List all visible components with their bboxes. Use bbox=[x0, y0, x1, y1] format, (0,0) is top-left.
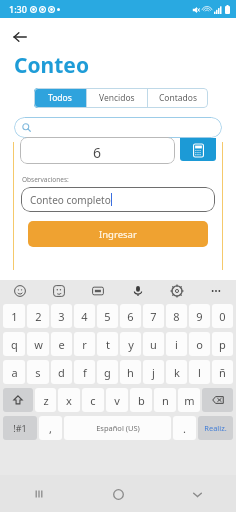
button[interactable]: Calculator bbox=[180, 138, 216, 161]
staticText: ñ bbox=[219, 365, 226, 380]
button[interactable]: i bbox=[166, 332, 187, 356]
button[interactable]: 6 bbox=[20, 137, 175, 164]
staticText: 9 bbox=[196, 309, 203, 324]
button[interactable]: x bbox=[58, 388, 80, 412]
staticText: Realiz. bbox=[204, 423, 227, 433]
button[interactable]: Conteo completo bbox=[21, 187, 215, 212]
staticText: k bbox=[174, 365, 180, 380]
button[interactable]: 5 bbox=[97, 304, 118, 328]
button[interactable]: Hide keyboard bbox=[184, 481, 210, 507]
staticText: f bbox=[83, 365, 87, 380]
button[interactable]: Contados bbox=[148, 88, 208, 108]
button[interactable]: Emoji bbox=[10, 281, 30, 301]
button[interactable]: More bbox=[206, 281, 226, 301]
button[interactable]: g bbox=[97, 360, 118, 384]
button[interactable]: u bbox=[143, 332, 164, 356]
button[interactable]: 8 bbox=[166, 304, 187, 328]
staticText: x bbox=[66, 393, 72, 408]
button[interactable]: 3 bbox=[51, 304, 72, 328]
button[interactable]: Recents bbox=[26, 481, 52, 507]
button[interactable]: b bbox=[130, 388, 152, 412]
button[interactable]: z bbox=[35, 388, 56, 412]
button[interactable]: Settings bbox=[167, 281, 187, 301]
button[interactable]: k bbox=[166, 360, 187, 384]
staticText: q bbox=[11, 337, 18, 352]
button[interactable]: Backspace bbox=[202, 388, 233, 412]
staticText: Vencidos bbox=[99, 92, 135, 104]
staticText: h bbox=[127, 365, 134, 380]
button[interactable]: c bbox=[82, 388, 104, 412]
button[interactable]: Realiz. bbox=[198, 416, 233, 440]
button[interactable]: o bbox=[189, 332, 210, 356]
staticText: z bbox=[43, 393, 49, 408]
staticText: v bbox=[114, 393, 120, 408]
staticText: Español (US) bbox=[96, 423, 140, 433]
button[interactable] bbox=[14, 117, 222, 138]
button[interactable]: Back bbox=[8, 25, 32, 49]
button[interactable]: n bbox=[154, 388, 176, 412]
staticText: w bbox=[34, 337, 43, 352]
button[interactable]: w bbox=[27, 332, 49, 356]
staticText: 4 bbox=[81, 309, 88, 324]
button[interactable]: 7 bbox=[143, 304, 164, 328]
button[interactable]: Español (US) bbox=[64, 416, 171, 440]
button[interactable]: e bbox=[51, 332, 72, 356]
staticText: m bbox=[184, 393, 195, 408]
staticText: , bbox=[49, 421, 52, 436]
staticText: . bbox=[183, 421, 186, 436]
button[interactable]: Todos bbox=[34, 88, 86, 108]
staticText: d bbox=[58, 365, 65, 380]
staticText: 1 bbox=[11, 309, 18, 324]
button[interactable]: . bbox=[173, 416, 196, 440]
button[interactable]: h bbox=[120, 360, 141, 384]
button[interactable]: Vencidos bbox=[87, 88, 147, 108]
button[interactable]: 9 bbox=[189, 304, 210, 328]
staticText: 8 bbox=[173, 309, 180, 324]
button[interactable]: ñ bbox=[212, 360, 233, 384]
button[interactable]: Voice input bbox=[128, 281, 148, 301]
staticText: Contados bbox=[159, 92, 198, 104]
button[interactable]: d bbox=[51, 360, 72, 384]
staticText: a bbox=[11, 365, 18, 380]
staticText: r bbox=[82, 337, 87, 352]
button[interactable]: 0 bbox=[212, 304, 233, 328]
button[interactable]: l bbox=[189, 360, 210, 384]
staticText: Conteo bbox=[14, 51, 90, 80]
button[interactable]: Home bbox=[105, 481, 131, 507]
staticText: u bbox=[150, 337, 157, 352]
button[interactable]: p bbox=[212, 332, 233, 356]
button[interactable]: f bbox=[74, 360, 95, 384]
staticText: Todos bbox=[48, 92, 72, 104]
button[interactable]: q bbox=[3, 332, 25, 356]
button[interactable]: m bbox=[178, 388, 200, 412]
staticText: j bbox=[152, 365, 155, 380]
staticText: 6 bbox=[127, 309, 134, 324]
staticText: Conteo completo bbox=[30, 193, 111, 207]
staticText: 6 bbox=[93, 143, 102, 162]
staticText: b bbox=[138, 393, 145, 408]
button[interactable]: t bbox=[97, 332, 118, 356]
button[interactable]: 6 bbox=[120, 304, 141, 328]
button[interactable]: r bbox=[74, 332, 95, 356]
button[interactable]: a bbox=[3, 360, 25, 384]
button[interactable]: Stickers bbox=[49, 281, 69, 301]
staticText: !#1 bbox=[13, 422, 27, 434]
staticText: 7 bbox=[150, 309, 157, 324]
button[interactable]: Ingresar bbox=[28, 221, 208, 247]
staticText: e bbox=[58, 337, 65, 352]
button[interactable]: j bbox=[143, 360, 164, 384]
button[interactable]: 1 bbox=[3, 304, 25, 328]
button[interactable]: v bbox=[106, 388, 128, 412]
staticText: 5 bbox=[104, 309, 111, 324]
button[interactable]: s bbox=[27, 360, 49, 384]
button[interactable]: !#1 bbox=[3, 416, 37, 440]
button[interactable]: 2 bbox=[27, 304, 49, 328]
staticText: 3 bbox=[58, 309, 65, 324]
button[interactable]: y bbox=[120, 332, 141, 356]
staticText: Ingresar bbox=[99, 228, 137, 241]
button[interactable]: GIF bbox=[88, 281, 108, 301]
staticText: n bbox=[162, 393, 169, 408]
button[interactable]: , bbox=[39, 416, 62, 440]
button[interactable]: 4 bbox=[74, 304, 95, 328]
button[interactable]: Shift bbox=[3, 388, 33, 412]
